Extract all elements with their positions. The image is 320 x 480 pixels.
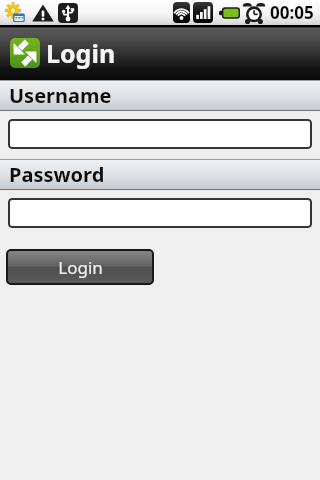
staticText: Login (58, 256, 103, 279)
button[interactable] (8, 119, 312, 149)
button[interactable]: Login (6, 249, 154, 285)
staticText: Login (46, 36, 116, 70)
staticText: 00:05 (270, 1, 314, 24)
button[interactable] (8, 198, 312, 228)
staticText: Password (9, 161, 105, 188)
staticText: Username (9, 82, 112, 109)
